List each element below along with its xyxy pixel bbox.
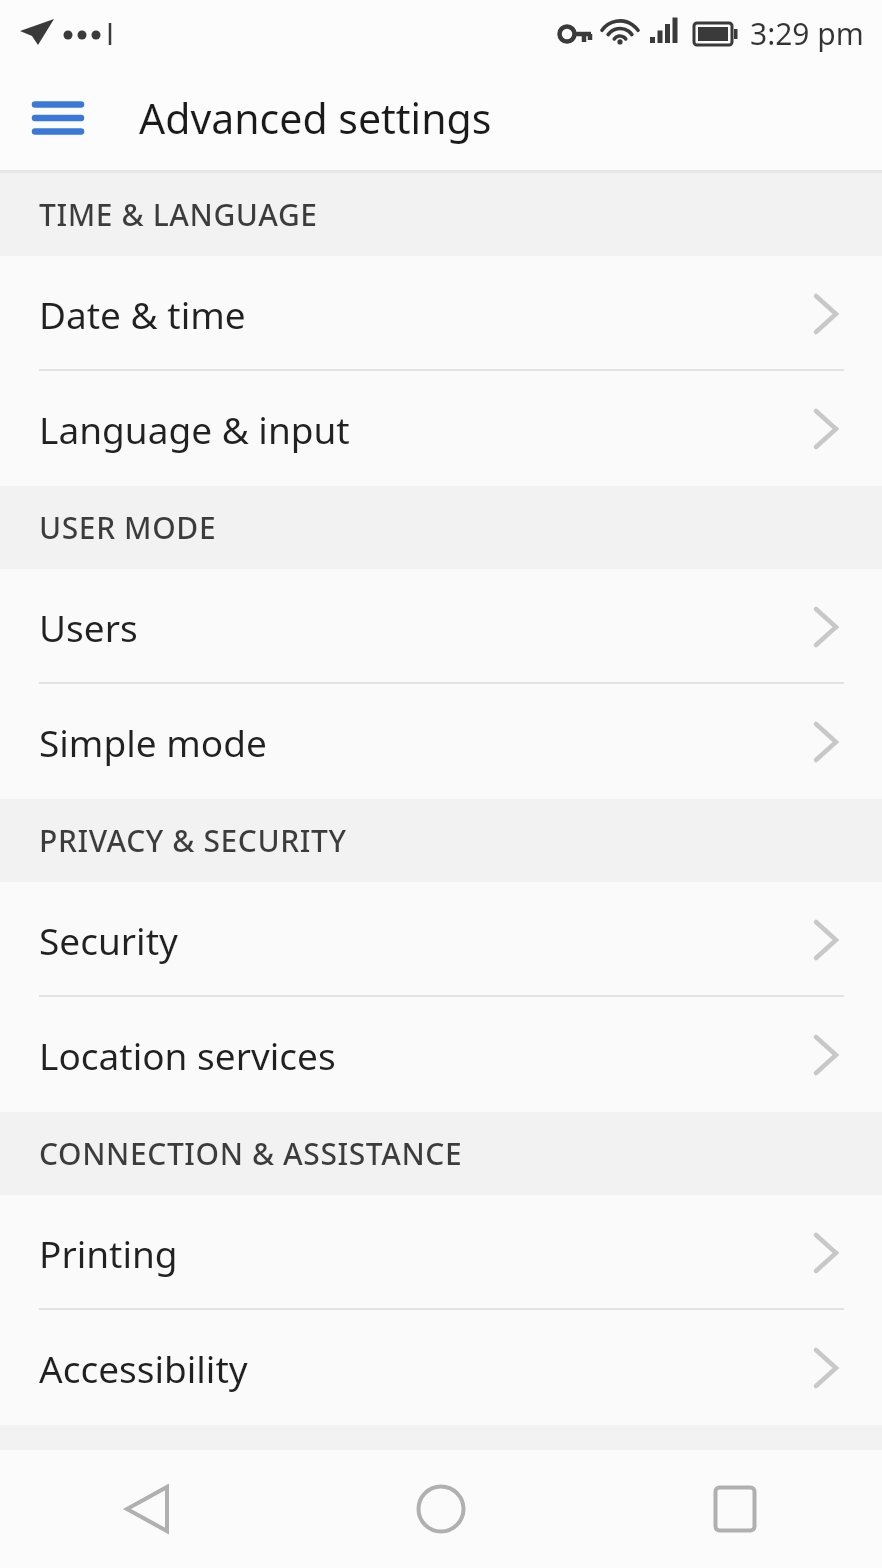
button[interactable]: Simple mode <box>0 684 882 799</box>
button[interactable]: Date & time <box>0 256 882 371</box>
button[interactable]: Users <box>0 569 882 684</box>
staticText: 3:29 pm <box>750 13 864 54</box>
staticText: TIME & LANGUAGE <box>39 194 318 235</box>
staticText: USER MODE <box>39 507 217 548</box>
button[interactable]: Open navigation menu <box>22 82 94 154</box>
staticText: CONNECTION & ASSISTANCE <box>39 1133 463 1174</box>
staticText: Location services <box>39 1030 336 1080</box>
staticText: Language & input <box>39 404 350 454</box>
staticText: Date & time <box>39 289 246 339</box>
button[interactable]: Printing <box>0 1195 882 1310</box>
staticText: Accessibility <box>39 1343 248 1393</box>
button[interactable]: Location services <box>0 997 882 1112</box>
button[interactable]: Back <box>0 1450 294 1568</box>
button[interactable]: Home <box>294 1450 588 1568</box>
staticText: Simple mode <box>39 717 267 767</box>
button[interactable]: Accessibility <box>0 1310 882 1425</box>
staticText: Security <box>39 915 178 965</box>
staticText: Advanced settings <box>139 90 492 146</box>
button[interactable]: Security <box>0 882 882 997</box>
staticText: PRIVACY & SECURITY <box>39 820 347 861</box>
button[interactable]: Language & input <box>0 371 882 486</box>
staticText: Users <box>39 602 138 652</box>
button[interactable]: Recent apps <box>588 1450 882 1568</box>
staticText: Printing <box>39 1228 178 1278</box>
